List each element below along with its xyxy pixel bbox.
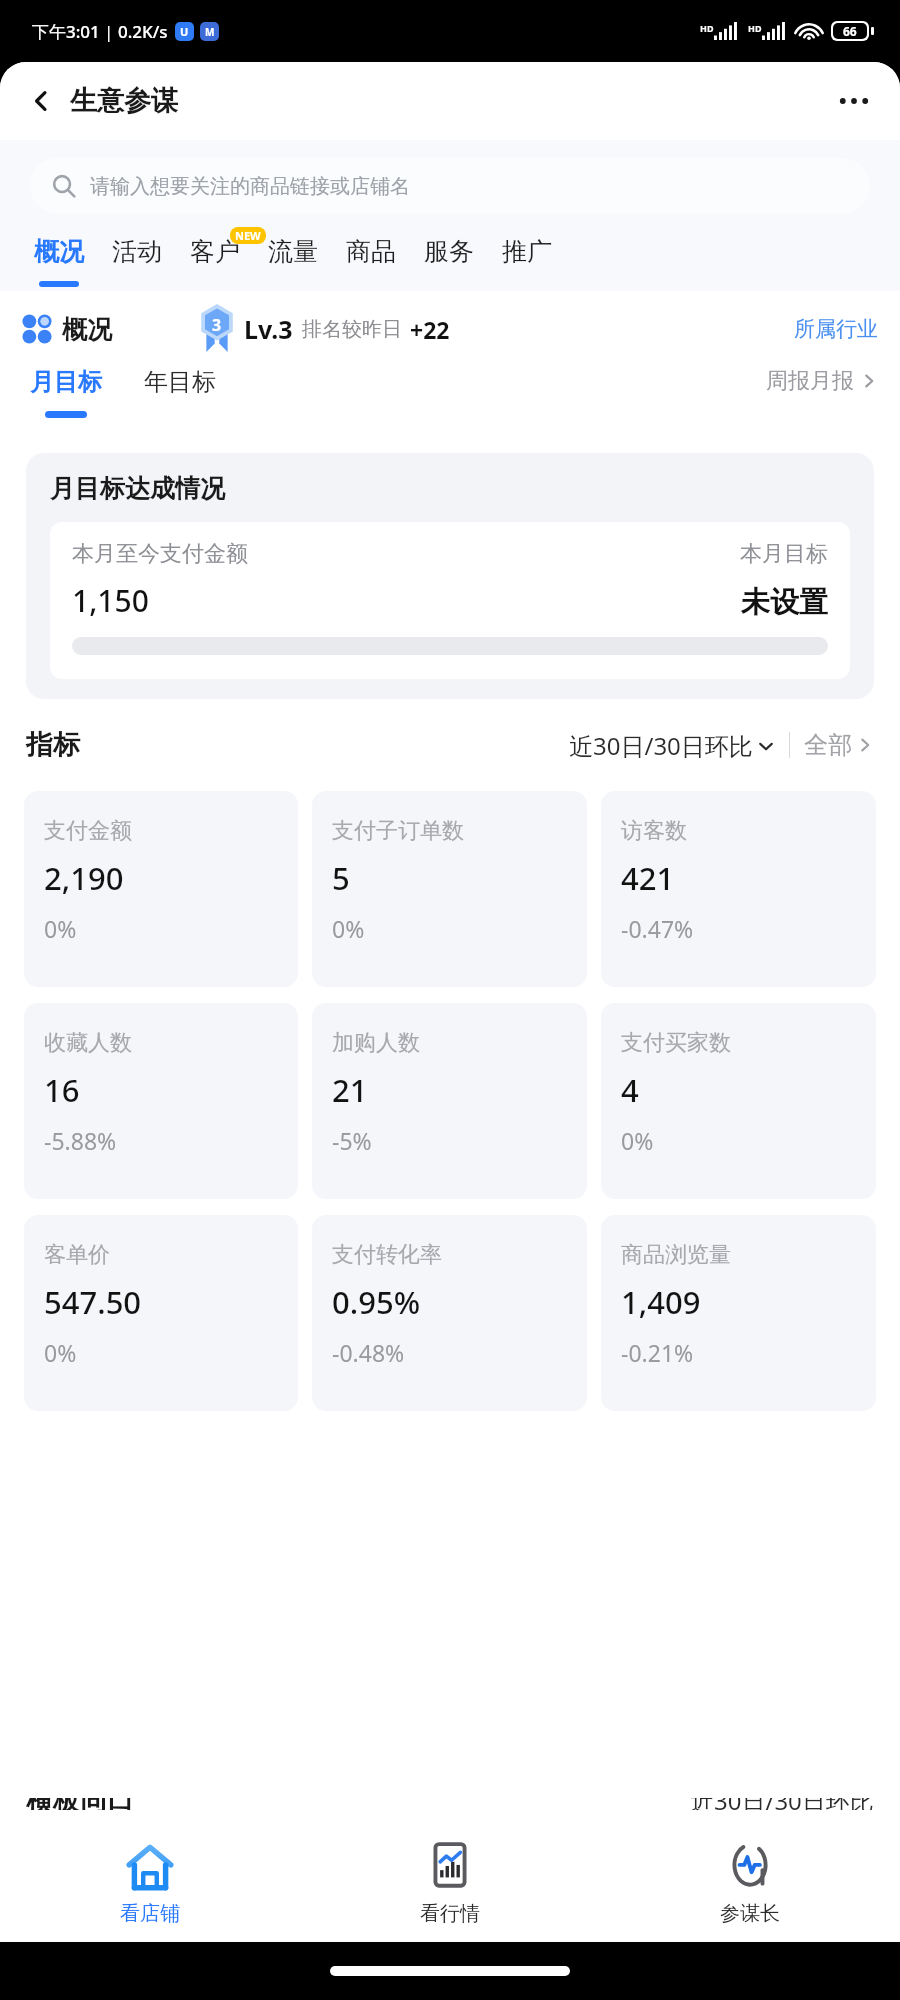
staticText: NEW (235, 228, 261, 243)
staticText: HD (700, 22, 714, 34)
staticText: 21 (332, 1069, 368, 1111)
button[interactable]: 看店铺 (0, 1824, 300, 1942)
staticText: 横板同口 (26, 1798, 134, 1810)
staticText: -0.21% (621, 1337, 694, 1368)
staticText: 看店铺 (120, 1901, 180, 1926)
button[interactable]: 请输入想要关注的商品链接或店铺名 (30, 158, 870, 214)
staticText: 16 (44, 1069, 80, 1111)
staticText: 全部 (804, 730, 852, 760)
button[interactable]: 商品 (332, 232, 410, 291)
staticText: 5 (332, 857, 350, 899)
staticText: 421 (621, 857, 675, 899)
staticText: 未设置 (741, 584, 828, 621)
button[interactable]: 月目标 (24, 367, 108, 418)
button[interactable]: Back (18, 78, 64, 124)
button[interactable]: 近30日/30日环比 (569, 729, 775, 762)
staticText: 1,150 (72, 580, 149, 621)
button[interactable]: 商品浏览量 (601, 1215, 876, 1411)
staticText: 0.2K/s (118, 20, 168, 43)
button[interactable]: 推广 (488, 232, 566, 291)
button[interactable]: 支付转化率 (312, 1215, 587, 1411)
staticText: 收藏人数 (44, 1029, 132, 1057)
staticText: | (100, 21, 118, 43)
staticText: 0% (44, 1337, 77, 1368)
button[interactable]: 全部 (804, 730, 874, 760)
staticText: 0.95% (332, 1281, 421, 1323)
staticText: M (205, 25, 215, 39)
staticText: 加购人数 (332, 1029, 420, 1057)
button[interactable]: 看行情 (300, 1824, 600, 1942)
staticText: 547.50 (44, 1281, 142, 1323)
staticText: 1,409 (621, 1281, 701, 1323)
button[interactable]: 客户 (176, 232, 254, 291)
staticText: 下午3:01 (32, 20, 100, 43)
staticText: 活动 (112, 236, 162, 267)
staticText: 3 (212, 314, 222, 336)
button[interactable]: 概况 (20, 232, 98, 291)
staticText: 近30日/30日环比 (569, 729, 753, 762)
button[interactable]: 加购人数 (312, 1003, 587, 1199)
staticText: 4 (621, 1069, 639, 1111)
staticText: 支付转化率 (332, 1241, 442, 1269)
staticText: 概况 (62, 314, 112, 345)
staticText: 流量 (268, 236, 318, 267)
staticText: 客户 (190, 236, 240, 267)
staticText: 请输入想要关注的商品链接或店铺名 (90, 174, 410, 199)
staticText: 年目标 (144, 367, 216, 397)
button[interactable]: 客单价 (24, 1215, 298, 1411)
button[interactable]: 周报月报 (766, 367, 878, 395)
staticText: 排名较昨日 (302, 317, 402, 342)
staticText: 66 (843, 23, 857, 39)
button[interactable]: 流量 (254, 232, 332, 291)
staticText: 2,190 (44, 857, 124, 899)
button[interactable]: 支付子订单数 (312, 791, 587, 987)
staticText: 月目标达成情况 (50, 473, 225, 504)
staticText: 商品 (346, 236, 396, 267)
button[interactable]: 服务 (410, 232, 488, 291)
staticText: 0% (44, 913, 77, 944)
button[interactable]: 收藏人数 (24, 1003, 298, 1199)
staticText: 商品浏览量 (621, 1241, 731, 1269)
staticText: 支付子订单数 (332, 817, 464, 845)
staticText: 推广 (502, 236, 552, 267)
staticText: -0.48% (332, 1337, 405, 1368)
staticText: 月目标 (30, 367, 102, 397)
staticText: 客单价 (44, 1241, 110, 1269)
staticText: 概况 (34, 236, 84, 267)
staticText: 指标 (26, 728, 80, 762)
button[interactable]: 参谋长 (600, 1824, 900, 1942)
staticText: 访客数 (621, 817, 687, 845)
button[interactable]: 月目标达成情况 (26, 453, 874, 699)
button[interactable]: More options (828, 75, 880, 127)
button[interactable]: 所属行业 (794, 316, 878, 342)
staticText: U (180, 24, 189, 39)
staticText: 支付买家数 (621, 1029, 731, 1057)
staticText: 所属行业 (794, 316, 878, 342)
button[interactable]: 支付金额 (24, 791, 298, 987)
staticText: 0% (332, 913, 365, 944)
staticText: 周报月报 (766, 367, 854, 395)
staticText: 参谋长 (720, 1901, 780, 1926)
staticText: 支付金额 (44, 817, 132, 845)
button[interactable]: 年目标 (138, 367, 222, 397)
staticText: 0% (621, 1125, 654, 1156)
staticText: 服务 (424, 236, 474, 267)
staticText: 生意参谋 (70, 84, 178, 118)
staticText: 本月目标 (740, 540, 828, 568)
staticText: HD (748, 22, 762, 34)
staticText: -5% (332, 1125, 372, 1156)
staticText: -0.47% (621, 913, 694, 944)
staticText: 近30日/30日环比 (690, 1798, 874, 1810)
staticText: 看行情 (420, 1901, 480, 1926)
button[interactable]: 活动 (98, 232, 176, 291)
button[interactable]: 访客数 (601, 791, 876, 987)
staticText: +22 (410, 314, 450, 345)
staticText: 本月至今支付金额 (72, 540, 248, 568)
button[interactable]: 支付买家数 (601, 1003, 876, 1199)
staticText: Lv.3 (244, 312, 293, 346)
staticText: -5.88% (44, 1125, 117, 1156)
